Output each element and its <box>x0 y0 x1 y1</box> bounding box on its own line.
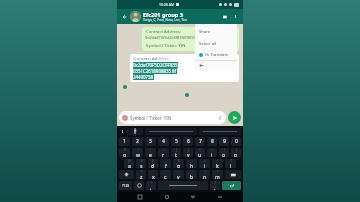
staticText: q <box>123 152 127 157</box>
staticText: e <box>149 152 152 157</box>
button[interactable]: है <box>127 128 143 135</box>
staticText: m <box>215 174 220 179</box>
staticText: s <box>140 163 143 168</box>
staticText: k <box>216 163 219 168</box>
button[interactable]: / <box>210 181 220 190</box>
button[interactable]: + <box>199 159 210 168</box>
button[interactable] <box>199 128 241 135</box>
staticText: है <box>134 129 137 135</box>
button[interactable]: - <box>186 159 197 168</box>
button[interactable]: & <box>173 159 184 168</box>
staticText: t <box>175 152 177 157</box>
button[interactable]: 4 <box>158 137 169 146</box>
button[interactable]: % <box>119 148 130 157</box>
button[interactable]: \ <box>132 148 143 157</box>
button[interactable]: Hi Translate <box>195 50 237 60</box>
button[interactable]: Settings <box>119 128 126 135</box>
staticText: 5 <box>175 138 178 145</box>
staticText: ! <box>205 170 206 174</box>
staticText: l <box>230 163 232 168</box>
button[interactable]: $ <box>148 159 158 168</box>
button[interactable]: 3 <box>145 137 156 146</box>
staticText: b <box>190 174 194 179</box>
button[interactable]: ·Contract Address: <box>142 27 239 51</box>
button[interactable]: ! <box>199 170 210 179</box>
button[interactable]: _ <box>160 159 171 168</box>
button[interactable]: ! <box>146 181 156 190</box>
staticText: - <box>192 159 193 163</box>
button[interactable]: " <box>148 170 158 179</box>
button[interactable]: Share <box>195 26 237 38</box>
button[interactable]: ] <box>183 148 193 157</box>
button[interactable]: Back <box>120 12 130 22</box>
button[interactable]: Efc201 group 3 <box>143 11 221 22</box>
staticText: ·Contract Address: <box>145 29 181 35</box>
button[interactable]: : <box>173 170 184 179</box>
button[interactable]: ·Contract Ad <box>130 54 239 82</box>
button[interactable]: Send <box>228 111 241 124</box>
button[interactable]: ? <box>212 170 223 179</box>
staticText: } <box>236 148 237 152</box>
staticText: { <box>224 148 225 152</box>
button[interactable]: 1 <box>119 137 130 146</box>
button[interactable]: 5 <box>171 137 181 146</box>
button[interactable]: 8 <box>207 137 217 146</box>
button[interactable]: ; <box>186 170 197 179</box>
button[interactable]: Key <box>134 181 144 190</box>
staticText: @ <box>128 159 131 163</box>
button[interactable]: Symbol / Ticker: YIN <box>119 111 226 124</box>
button[interactable]: Video call <box>221 12 231 22</box>
button[interactable]: ( <box>212 159 223 168</box>
button[interactable]: Keyboard <box>216 193 224 201</box>
staticText: | <box>150 148 152 152</box>
button[interactable]: { <box>219 148 229 157</box>
button[interactable]: ' <box>160 170 171 179</box>
button[interactable]: @ <box>124 159 134 168</box>
staticText: 3 <box>149 138 152 145</box>
staticText: , <box>150 185 152 190</box>
staticText: y <box>187 152 190 157</box>
button[interactable]: ) <box>225 159 236 168</box>
button[interactable]: Enter <box>222 181 241 190</box>
button[interactable]: 7 <box>195 137 205 146</box>
button[interactable] <box>145 128 197 135</box>
button[interactable]: * <box>136 170 146 179</box>
button[interactable]: } <box>231 148 241 157</box>
staticText: Tonya, C, Paul, Nma, Leo, You <box>143 18 187 22</box>
button[interactable]: Key <box>225 170 241 179</box>
staticText: 9 <box>223 138 226 145</box>
staticText: 8 <box>211 138 214 145</box>
button[interactable]: 9 <box>219 137 229 146</box>
staticText: ? <box>217 170 219 174</box>
staticText: ·Contract Ad <box>133 56 158 62</box>
staticText: ·Symbol / Ticker: YIN <box>145 43 186 49</box>
button[interactable]: | <box>145 148 156 157</box>
button[interactable]: Key <box>119 170 134 179</box>
button[interactable]: [ <box>171 148 181 157</box>
button[interactable]: # <box>136 159 146 168</box>
button[interactable]: 6 <box>183 137 193 146</box>
button[interactable]: < <box>195 148 205 157</box>
button[interactable]: Recents <box>136 193 144 201</box>
button[interactable] <box>158 181 208 190</box>
staticText: 0351C2618908835 8f <box>133 68 177 74</box>
staticText: $ <box>152 159 154 163</box>
staticText: = <box>163 148 165 152</box>
staticText: p <box>234 152 238 157</box>
button[interactable]: Back <box>189 193 197 201</box>
button[interactable] <box>130 11 141 22</box>
button[interactable]: More options <box>231 12 240 21</box>
button[interactable]: = <box>158 148 169 157</box>
button[interactable]: Back <box>195 61 237 69</box>
staticText: Share <box>199 29 211 35</box>
button[interactable]: Key <box>119 181 132 190</box>
staticText: f <box>165 163 167 168</box>
button[interactable]: > <box>207 148 217 157</box>
staticText: d <box>151 163 155 168</box>
button[interactable]: 0 <box>231 137 241 146</box>
button[interactable]: 2 <box>132 137 143 146</box>
staticText: * <box>141 170 143 174</box>
button[interactable]: Home <box>163 193 171 201</box>
staticText: v <box>177 174 180 179</box>
button[interactable]: Select all <box>195 38 237 50</box>
